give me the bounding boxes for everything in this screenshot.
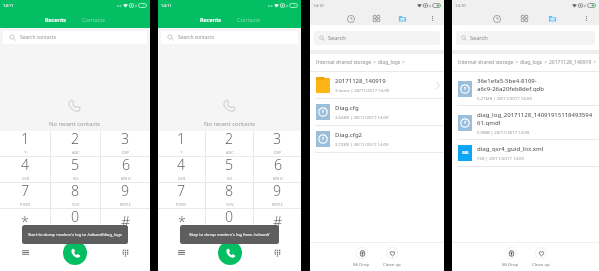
staticText: ? xyxy=(464,86,466,92)
staticText: # xyxy=(273,212,283,231)
button[interactable]: 5 xyxy=(51,157,100,182)
button[interactable]: # xyxy=(254,209,301,234)
button[interactable]: Files xyxy=(546,12,559,25)
staticText: JKL xyxy=(73,176,79,180)
button[interactable]: Search xyxy=(314,31,440,45)
staticText: 6 xyxy=(122,155,131,174)
staticText: Search xyxy=(470,34,488,42)
button[interactable]: Call xyxy=(63,241,87,265)
staticText: ∞ xyxy=(24,150,28,154)
staticText: 8 xyxy=(225,181,234,200)
button[interactable]: Search contacts xyxy=(3,31,147,44)
button[interactable]: 3 xyxy=(101,131,150,156)
staticText: 5 xyxy=(71,155,80,174)
button[interactable]: 6 xyxy=(254,157,301,182)
staticText: 5 xyxy=(225,155,234,174)
button[interactable]: 20171128_140919 xyxy=(310,72,444,98)
button[interactable]: Internal shared storage xyxy=(452,54,599,71)
button[interactable]: Recents xyxy=(194,14,228,26)
staticText: XML xyxy=(462,151,469,155)
button[interactable]: Dialpad xyxy=(253,234,301,271)
staticText: WXYZ xyxy=(272,202,283,206)
button[interactable]: Call log xyxy=(0,234,50,271)
staticText: 1 xyxy=(21,129,30,148)
staticText: # xyxy=(121,212,131,231)
staticText: ? xyxy=(322,136,324,142)
button[interactable]: Recent xyxy=(490,12,503,25)
staticText: * xyxy=(21,212,29,231)
button[interactable]: 8 xyxy=(51,183,100,208)
button[interactable]: 9 xyxy=(101,183,150,208)
button[interactable]: 4 xyxy=(0,157,50,182)
button[interactable]: Call xyxy=(50,234,100,271)
button[interactable]: ? xyxy=(452,106,599,139)
button[interactable]: Internal shared storage xyxy=(310,54,444,71)
staticText: MNO xyxy=(273,176,283,180)
staticText: diag_log_20171128_1409191511849359461.qm… xyxy=(477,111,595,127)
button[interactable]: 3 xyxy=(254,131,301,156)
button[interactable]: ? xyxy=(310,99,444,125)
button[interactable]: 1 xyxy=(0,131,50,156)
button[interactable]: ? xyxy=(310,126,444,152)
button[interactable]: More options xyxy=(580,12,593,25)
staticText: 3.64KB | 28/11/2017 14:09 xyxy=(335,114,389,120)
button[interactable]: Contacts xyxy=(231,14,266,26)
staticText: 2 xyxy=(225,129,234,148)
button[interactable]: Categories xyxy=(518,12,531,25)
button[interactable]: 4 xyxy=(158,157,205,182)
staticText: ABC xyxy=(226,150,234,154)
button[interactable]: Call log xyxy=(158,234,205,271)
button[interactable]: 2 xyxy=(206,131,253,156)
button[interactable]: XML xyxy=(452,140,599,166)
button[interactable]: 0 xyxy=(51,209,100,234)
staticText: GHI xyxy=(22,176,30,180)
button[interactable]: More options xyxy=(426,12,439,25)
button[interactable]: 1 xyxy=(158,131,205,156)
button[interactable]: * xyxy=(158,209,205,234)
button[interactable]: 2 xyxy=(51,131,100,156)
button[interactable]: # xyxy=(101,209,150,234)
button[interactable]: ? xyxy=(452,72,599,105)
staticText: diag_logs xyxy=(520,59,543,66)
staticText: 9 xyxy=(273,181,282,200)
staticText: JKL xyxy=(227,176,233,180)
staticText: ? xyxy=(322,109,324,115)
staticText: * xyxy=(178,212,186,231)
staticText: Internal shared storage xyxy=(458,59,514,66)
button[interactable]: Contacts xyxy=(76,14,111,26)
staticText: Search contacts xyxy=(20,34,57,41)
staticText: Mi Drop xyxy=(353,261,370,267)
button[interactable]: 9 xyxy=(254,183,301,208)
button[interactable]: Search contacts xyxy=(161,31,298,44)
button[interactable]: Mi Drop xyxy=(499,247,522,267)
staticText: 3 items | 28/11/2017 14:09 xyxy=(335,87,390,93)
button[interactable]: Search xyxy=(456,31,595,45)
button[interactable]: Clean up xyxy=(529,247,553,267)
staticText: ∞ xyxy=(180,150,184,154)
button[interactable]: 8 xyxy=(206,183,253,208)
button[interactable]: 0 xyxy=(206,209,253,234)
staticText: 5.21MB | 28/11/2017 14:09 xyxy=(477,95,532,101)
button[interactable]: Call xyxy=(205,234,253,271)
staticText: 5.9MB | 28/11/2017 14:09 xyxy=(477,129,530,135)
button[interactable]: Files xyxy=(396,12,409,25)
button[interactable]: Dialpad xyxy=(100,234,150,271)
button[interactable]: * xyxy=(0,209,50,234)
button[interactable]: 7 xyxy=(0,183,50,208)
staticText: > xyxy=(401,59,407,66)
button[interactable]: Mi Drop xyxy=(350,247,373,267)
button[interactable]: Recents xyxy=(39,14,73,26)
staticText: 6 xyxy=(274,155,283,174)
staticText: ABC xyxy=(72,150,80,154)
staticText: Contacts xyxy=(82,16,105,24)
button[interactable]: Clean up xyxy=(380,247,404,267)
button[interactable]: Categories xyxy=(370,12,383,25)
button[interactable]: Call xyxy=(218,241,242,265)
button[interactable]: 7 xyxy=(158,183,205,208)
staticText: 20171128_140919 xyxy=(335,77,386,85)
button[interactable]: Recent xyxy=(344,12,357,25)
staticText: > xyxy=(372,59,378,66)
button[interactable]: 5 xyxy=(206,157,253,182)
button[interactable]: 6 xyxy=(101,157,150,182)
